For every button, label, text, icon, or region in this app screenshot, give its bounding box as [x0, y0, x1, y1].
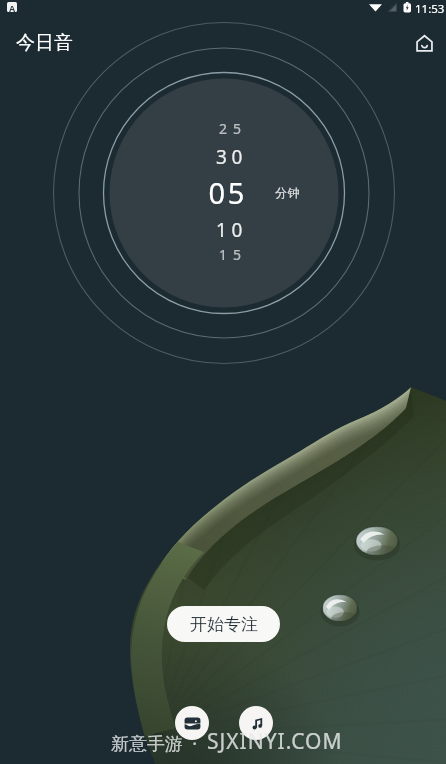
staticText: 15	[218, 245, 247, 264]
staticText: 11:53	[415, 1, 445, 17]
staticText: 今日音	[16, 31, 73, 55]
staticText: 05	[208, 173, 247, 212]
staticText: 30	[216, 144, 247, 170]
button[interactable]: Change background image	[175, 706, 209, 740]
staticText: SJXINYI.COM	[207, 727, 343, 756]
staticText: 开始专注	[190, 614, 258, 635]
button[interactable]: Music	[239, 706, 273, 740]
staticText: 分钟	[275, 185, 301, 200]
staticText: 10	[216, 217, 247, 243]
staticText: ·	[183, 731, 207, 756]
button[interactable]: Home	[404, 23, 444, 63]
staticText: 新意手游	[111, 733, 183, 756]
staticText: 25	[218, 119, 247, 138]
button[interactable]: 开始专注	[167, 606, 280, 642]
staticText: A	[9, 2, 16, 12]
